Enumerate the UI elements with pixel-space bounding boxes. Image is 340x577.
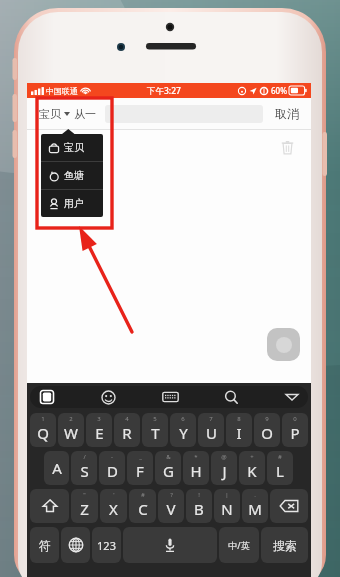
staticText: 0 <box>293 415 297 423</box>
staticText: 1 <box>41 415 45 423</box>
staticText: D <box>107 461 118 481</box>
button[interactable]: # <box>129 489 156 523</box>
staticText: 4 <box>125 415 129 423</box>
staticText: 搜索 <box>273 538 297 553</box>
staticText: M <box>248 499 262 519</box>
staticText: E <box>95 423 104 443</box>
staticText: & <box>166 453 171 461</box>
staticText: | <box>225 491 229 499</box>
staticText: X <box>109 499 118 519</box>
staticText: 5 <box>153 415 157 423</box>
staticText: 60% <box>271 85 287 96</box>
staticText: 用户 <box>64 197 84 210</box>
button[interactable]: 1 <box>30 413 56 447</box>
button[interactable]: " <box>71 489 98 523</box>
staticText: Q <box>37 423 49 443</box>
button[interactable] <box>105 105 263 123</box>
staticText: # <box>141 491 145 499</box>
button[interactable]: 6 <box>170 413 196 447</box>
staticText: 从一 <box>74 107 96 121</box>
button[interactable]: 4 <box>114 413 140 447</box>
staticText: 7 <box>209 415 213 423</box>
staticText: W <box>64 423 78 443</box>
staticText: + <box>250 453 254 461</box>
button[interactable]: 2 <box>58 413 84 447</box>
button[interactable]: & <box>155 451 181 485</box>
button[interactable]: * <box>183 451 209 485</box>
button[interactable]: Sogou <box>39 389 55 405</box>
staticText: T <box>151 423 160 443</box>
button[interactable]: Hide keyboard <box>285 392 299 402</box>
button[interactable]: 5 <box>142 413 168 447</box>
staticText: 宝贝 <box>39 107 61 121</box>
button[interactable]: Assistive touch <box>267 328 300 361</box>
button[interactable]: Backspace <box>270 489 308 523</box>
staticText: 2 <box>69 415 73 423</box>
button[interactable]: 7 <box>198 413 224 447</box>
staticText: 鱼塘 <box>64 169 84 182</box>
staticText: 宝贝 <box>64 141 84 154</box>
button[interactable]: + <box>239 451 265 485</box>
button[interactable]: @ <box>211 451 237 485</box>
staticText: * <box>194 453 198 461</box>
button[interactable]: Keyboard <box>162 391 179 403</box>
button[interactable]: 0 <box>282 413 308 447</box>
staticText: # <box>278 453 282 461</box>
button[interactable]: Voice input <box>123 527 217 563</box>
button[interactable]: . <box>242 489 268 523</box>
button[interactable]: 宝贝 <box>41 134 103 161</box>
button[interactable]: ! <box>186 489 212 523</box>
button[interactable]: | <box>214 489 240 523</box>
button[interactable]: 宝贝 <box>27 98 105 129</box>
button[interactable]: Language <box>61 527 90 563</box>
button[interactable]: Emoji <box>101 390 116 405</box>
staticText: ? <box>170 491 173 499</box>
button[interactable]: 3 <box>86 413 112 447</box>
staticText: 6 <box>181 415 185 423</box>
staticText: ' <box>113 491 115 499</box>
button[interactable]: - <box>99 451 125 485</box>
button[interactable]: 中/英 <box>219 527 259 563</box>
staticText: C <box>138 499 148 519</box>
staticText: Z <box>80 499 89 519</box>
staticText: 123 <box>97 538 116 553</box>
button[interactable]: 搜索 <box>261 527 308 563</box>
staticText: B <box>194 499 204 519</box>
staticText: 3 <box>97 415 101 423</box>
staticText: 中国联通 <box>46 86 78 96</box>
button[interactable]: 取消 <box>263 98 311 129</box>
button[interactable]: _ <box>127 451 153 485</box>
button[interactable]: Search <box>224 390 239 405</box>
staticText: O <box>261 423 273 443</box>
staticText: K <box>247 461 257 481</box>
button[interactable]: A <box>44 451 69 485</box>
button[interactable]: 符 <box>30 527 59 563</box>
staticText: I <box>236 423 242 443</box>
staticText: 符 <box>39 538 51 553</box>
button[interactable]: ? <box>158 489 184 523</box>
button[interactable]: # <box>267 451 293 485</box>
button[interactable]: 鱼塘 <box>41 162 103 189</box>
staticText: 8 <box>237 415 241 423</box>
staticText: . <box>254 491 256 499</box>
button[interactable]: ' <box>100 489 127 523</box>
staticText: 取消 <box>275 106 299 121</box>
button[interactable]: 用户 <box>41 190 103 217</box>
staticText: " <box>83 491 86 499</box>
staticText: L <box>276 461 284 481</box>
button[interactable]: Delete <box>279 139 296 156</box>
staticText: F <box>136 461 144 481</box>
button[interactable]: 9 <box>254 413 280 447</box>
staticText: V <box>166 499 176 519</box>
staticText: _ <box>139 453 142 461</box>
staticText: J <box>222 461 227 481</box>
button[interactable]: / <box>71 451 97 485</box>
button[interactable]: Shift <box>30 489 69 523</box>
staticText: 下午3:27 <box>147 85 181 97</box>
staticText: S <box>80 461 89 481</box>
button[interactable]: 8 <box>226 413 252 447</box>
staticText: 中/英 <box>228 539 250 551</box>
button[interactable]: 123 <box>92 527 121 563</box>
staticText: / <box>83 453 86 461</box>
staticText: P <box>290 423 300 443</box>
